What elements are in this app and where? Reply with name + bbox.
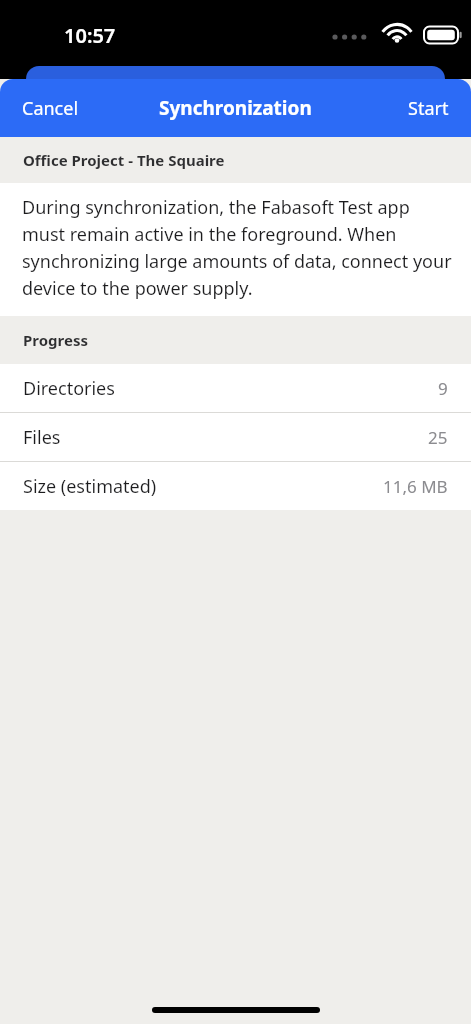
staticText: 11,6 MB — [383, 475, 448, 498]
staticText: Progress — [23, 330, 88, 350]
staticText: During synchronization, the Fabasoft Tes… — [22, 195, 455, 300]
button[interactable]: Start — [386, 79, 471, 137]
staticText: Cancel — [22, 96, 79, 121]
staticText: Start — [408, 96, 449, 121]
staticText: Directories — [23, 376, 115, 401]
staticText: Files — [23, 425, 61, 450]
button[interactable]: Cancel — [0, 79, 101, 137]
staticText: 10:57 — [64, 22, 116, 49]
staticText: Size (estimated) — [23, 474, 157, 499]
staticText: 25 — [428, 426, 448, 449]
button[interactable]: Directories — [0, 364, 471, 412]
staticText: Synchronization — [159, 95, 312, 121]
staticText: 9 — [438, 377, 448, 400]
button[interactable]: Size (estimated) — [0, 462, 471, 510]
staticText: Office Project - The Squaire — [23, 150, 225, 170]
button[interactable]: Files — [0, 413, 471, 461]
